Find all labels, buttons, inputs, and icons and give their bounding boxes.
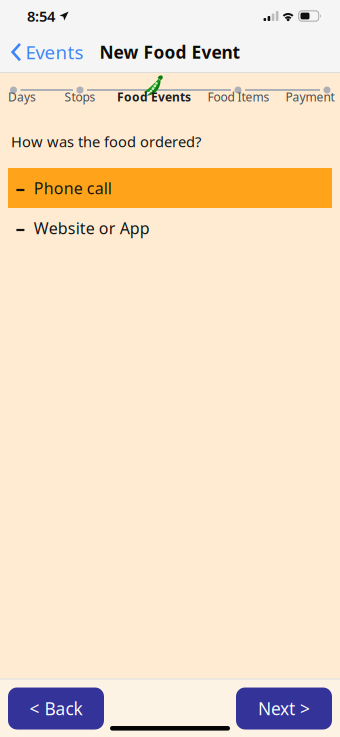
staticText: Events	[26, 40, 84, 64]
staticText: Phone call	[34, 177, 112, 199]
staticText: Website or App	[34, 217, 150, 239]
staticText: How was the food ordered?	[11, 132, 201, 151]
staticText: Food Items	[207, 89, 269, 105]
button[interactable]: Back	[8, 687, 104, 729]
staticText: New Food Event	[99, 40, 240, 63]
staticText: Days	[8, 89, 36, 105]
staticText: Payment	[285, 89, 334, 105]
button[interactable]: Website or App	[8, 208, 332, 248]
staticText: 8:54	[27, 6, 55, 26]
staticText: Food Events	[117, 89, 191, 105]
staticText: < Back	[29, 697, 82, 720]
button[interactable]: Events	[0, 32, 92, 72]
button[interactable]: Next	[236, 687, 332, 729]
staticText: Next >	[258, 697, 310, 720]
button[interactable]: Phone call	[8, 168, 332, 208]
staticText: Stops	[64, 89, 95, 105]
